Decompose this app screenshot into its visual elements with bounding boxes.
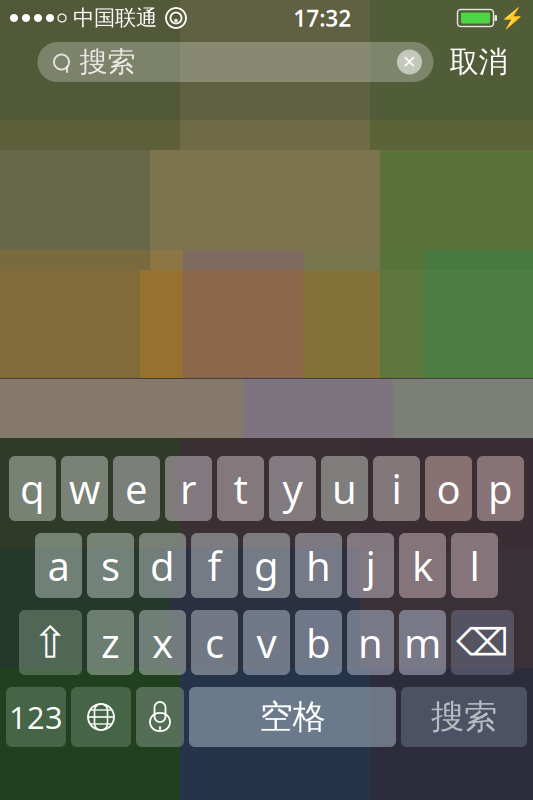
staticText: l [469,539,479,592]
staticText: 123 [9,697,63,737]
staticText: y [282,462,302,515]
staticText: m [404,616,441,669]
button[interactable]: l [451,533,498,598]
button[interactable]: 123 [6,687,66,747]
staticText: 搜索 [79,45,135,79]
button[interactable]: t [217,456,264,521]
staticText: w [69,462,100,515]
button[interactable]: Next keyboard [71,687,131,747]
button[interactable]: r [165,456,212,521]
staticText: 搜索 [431,696,497,737]
staticText: 取消 [449,44,507,80]
staticText: j [365,539,375,592]
staticText: h [306,539,331,592]
staticText: ✕ [402,52,417,72]
staticText: c [205,616,224,669]
staticText: z [101,616,120,669]
staticText: k [412,539,433,592]
button[interactable]: e [113,456,160,521]
button[interactable]: 取消 [433,41,523,83]
staticText: x [152,616,173,669]
button[interactable]: s [87,533,134,598]
staticText: p [488,462,513,515]
button[interactable]: Delete [451,610,514,675]
button[interactable]: n [347,610,394,675]
button[interactable]: q [9,456,56,521]
button[interactable]: u [321,456,368,521]
staticText: ⚡ [500,7,525,29]
staticText: ⇧ [32,617,69,667]
button[interactable]: f [191,533,238,598]
staticText: e [125,462,148,515]
button[interactable]: g [243,533,290,598]
staticText: s [101,539,120,592]
staticText: r [180,462,197,515]
button[interactable]: k [399,533,446,598]
staticText: ⌫ [456,621,509,664]
button[interactable]: p [477,456,524,521]
button[interactable]: m [399,610,446,675]
staticText: v [256,616,276,669]
button[interactable]: j [347,533,394,598]
staticText: 空格 [259,696,325,737]
button[interactable]: z [87,610,134,675]
staticText: d [150,539,175,592]
button[interactable]: y [269,456,316,521]
staticText: q [20,462,45,515]
button[interactable]: v [243,610,290,675]
staticText: u [332,462,357,515]
button[interactable]: Dictation [136,687,184,747]
button[interactable]: w [61,456,108,521]
button[interactable]: i [373,456,420,521]
staticText: b [306,616,331,669]
button[interactable]: 搜索 [37,42,433,82]
button[interactable]: o [425,456,472,521]
button[interactable]: Shift [19,610,82,675]
button[interactable]: c [191,610,238,675]
button[interactable]: x [139,610,186,675]
staticText: 17:32 [293,3,351,33]
button[interactable]: 空格 [189,687,396,747]
button[interactable]: b [295,610,342,675]
button[interactable]: 搜索 [401,687,527,747]
staticText: i [391,462,401,515]
button[interactable]: d [139,533,186,598]
button[interactable]: h [295,533,342,598]
button[interactable]: a [35,533,82,598]
staticText: t [233,462,247,515]
staticText: 中国联通 [73,5,157,31]
staticText: o [436,462,460,515]
staticText: f [207,539,221,592]
staticText: g [254,539,279,592]
staticText: a [47,539,69,592]
staticText: n [358,616,383,669]
